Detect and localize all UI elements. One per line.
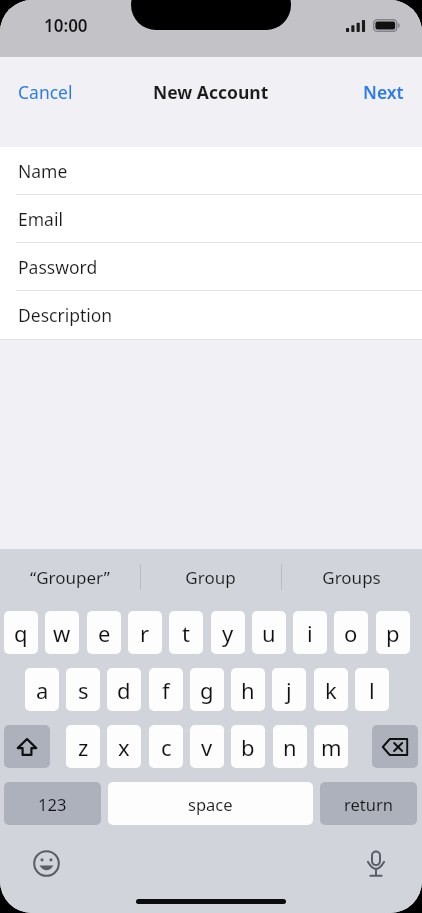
button[interactable]: u <box>252 611 286 654</box>
staticText: d <box>117 675 131 705</box>
button[interactable]: t <box>169 611 203 654</box>
staticText: i <box>307 618 313 648</box>
button[interactable]: s <box>66 668 100 711</box>
button[interactable]: Next <box>345 71 422 113</box>
button[interactable]: w <box>45 611 79 654</box>
button[interactable]: “Grouper” <box>0 549 140 605</box>
button[interactable]: m <box>314 725 348 768</box>
staticText: Cancel <box>18 80 73 104</box>
staticText: s <box>78 675 89 705</box>
button[interactable]: g <box>190 668 224 711</box>
button[interactable]: Groups <box>281 549 422 605</box>
button[interactable]: i <box>293 611 327 654</box>
button[interactable]: k <box>314 668 348 711</box>
staticText: x <box>118 732 130 762</box>
button[interactable]: n <box>273 725 307 768</box>
button[interactable]: Cancel <box>0 71 91 113</box>
button[interactable]: b <box>231 725 265 768</box>
button[interactable]: Backspace <box>372 725 418 768</box>
button[interactable]: p <box>376 611 410 654</box>
staticText: f <box>162 675 170 705</box>
staticText: Password <box>18 255 98 279</box>
button[interactable]: Name <box>0 147 422 195</box>
button[interactable]: z <box>66 725 100 768</box>
staticText: Name <box>18 159 68 183</box>
button[interactable]: Email <box>0 195 422 243</box>
staticText: e <box>98 618 111 648</box>
button[interactable]: 123 <box>4 782 101 825</box>
button[interactable]: Shift <box>4 725 50 768</box>
staticText: w <box>53 618 71 648</box>
staticText: “Grouper” <box>30 566 110 589</box>
staticText: l <box>369 675 375 705</box>
button[interactable]: e <box>87 611 121 654</box>
button[interactable]: f <box>149 668 183 711</box>
button[interactable]: space <box>108 782 313 825</box>
button[interactable]: j <box>272 668 306 711</box>
staticText: Email <box>18 207 63 231</box>
button[interactable]: c <box>149 725 183 768</box>
button[interactable]: Group <box>140 549 281 605</box>
staticText: k <box>325 675 337 705</box>
button[interactable]: h <box>231 668 265 711</box>
staticText: u <box>262 618 276 648</box>
button[interactable]: d <box>107 668 141 711</box>
staticText: g <box>200 675 214 705</box>
staticText: t <box>182 618 190 648</box>
button[interactable]: v <box>190 725 224 768</box>
staticText: z <box>78 732 89 762</box>
staticText: 10:00 <box>44 14 88 37</box>
button[interactable]: r <box>128 611 162 654</box>
staticText: 123 <box>38 793 67 815</box>
staticText: Description <box>18 303 113 327</box>
staticText: a <box>36 675 49 705</box>
button[interactable]: Emoji <box>26 843 66 883</box>
button[interactable]: x <box>107 725 141 768</box>
button[interactable]: q <box>4 611 38 654</box>
button[interactable]: Description <box>0 291 422 339</box>
staticText: Group <box>185 566 236 589</box>
staticText: b <box>241 732 255 762</box>
staticText: j <box>286 675 292 705</box>
staticText: Groups <box>322 566 381 589</box>
staticText: Next <box>363 80 404 104</box>
staticText: return <box>344 793 393 815</box>
button[interactable]: return <box>320 782 417 825</box>
staticText: y <box>222 618 234 648</box>
staticText: v <box>201 732 213 762</box>
staticText: n <box>283 732 297 762</box>
staticText: New Account <box>153 80 269 104</box>
button[interactable]: a <box>25 668 59 711</box>
staticText: p <box>386 618 400 648</box>
staticText: h <box>241 675 255 705</box>
button[interactable]: y <box>211 611 245 654</box>
button[interactable]: Password <box>0 243 422 291</box>
staticText: r <box>140 618 150 648</box>
staticText: c <box>161 732 172 762</box>
button[interactable]: l <box>355 668 389 711</box>
staticText: space <box>188 793 233 815</box>
staticText: q <box>14 618 28 648</box>
button[interactable]: Dictation <box>356 843 396 883</box>
staticText: m <box>321 732 342 762</box>
button[interactable]: o <box>334 611 368 654</box>
staticText: o <box>344 618 358 648</box>
